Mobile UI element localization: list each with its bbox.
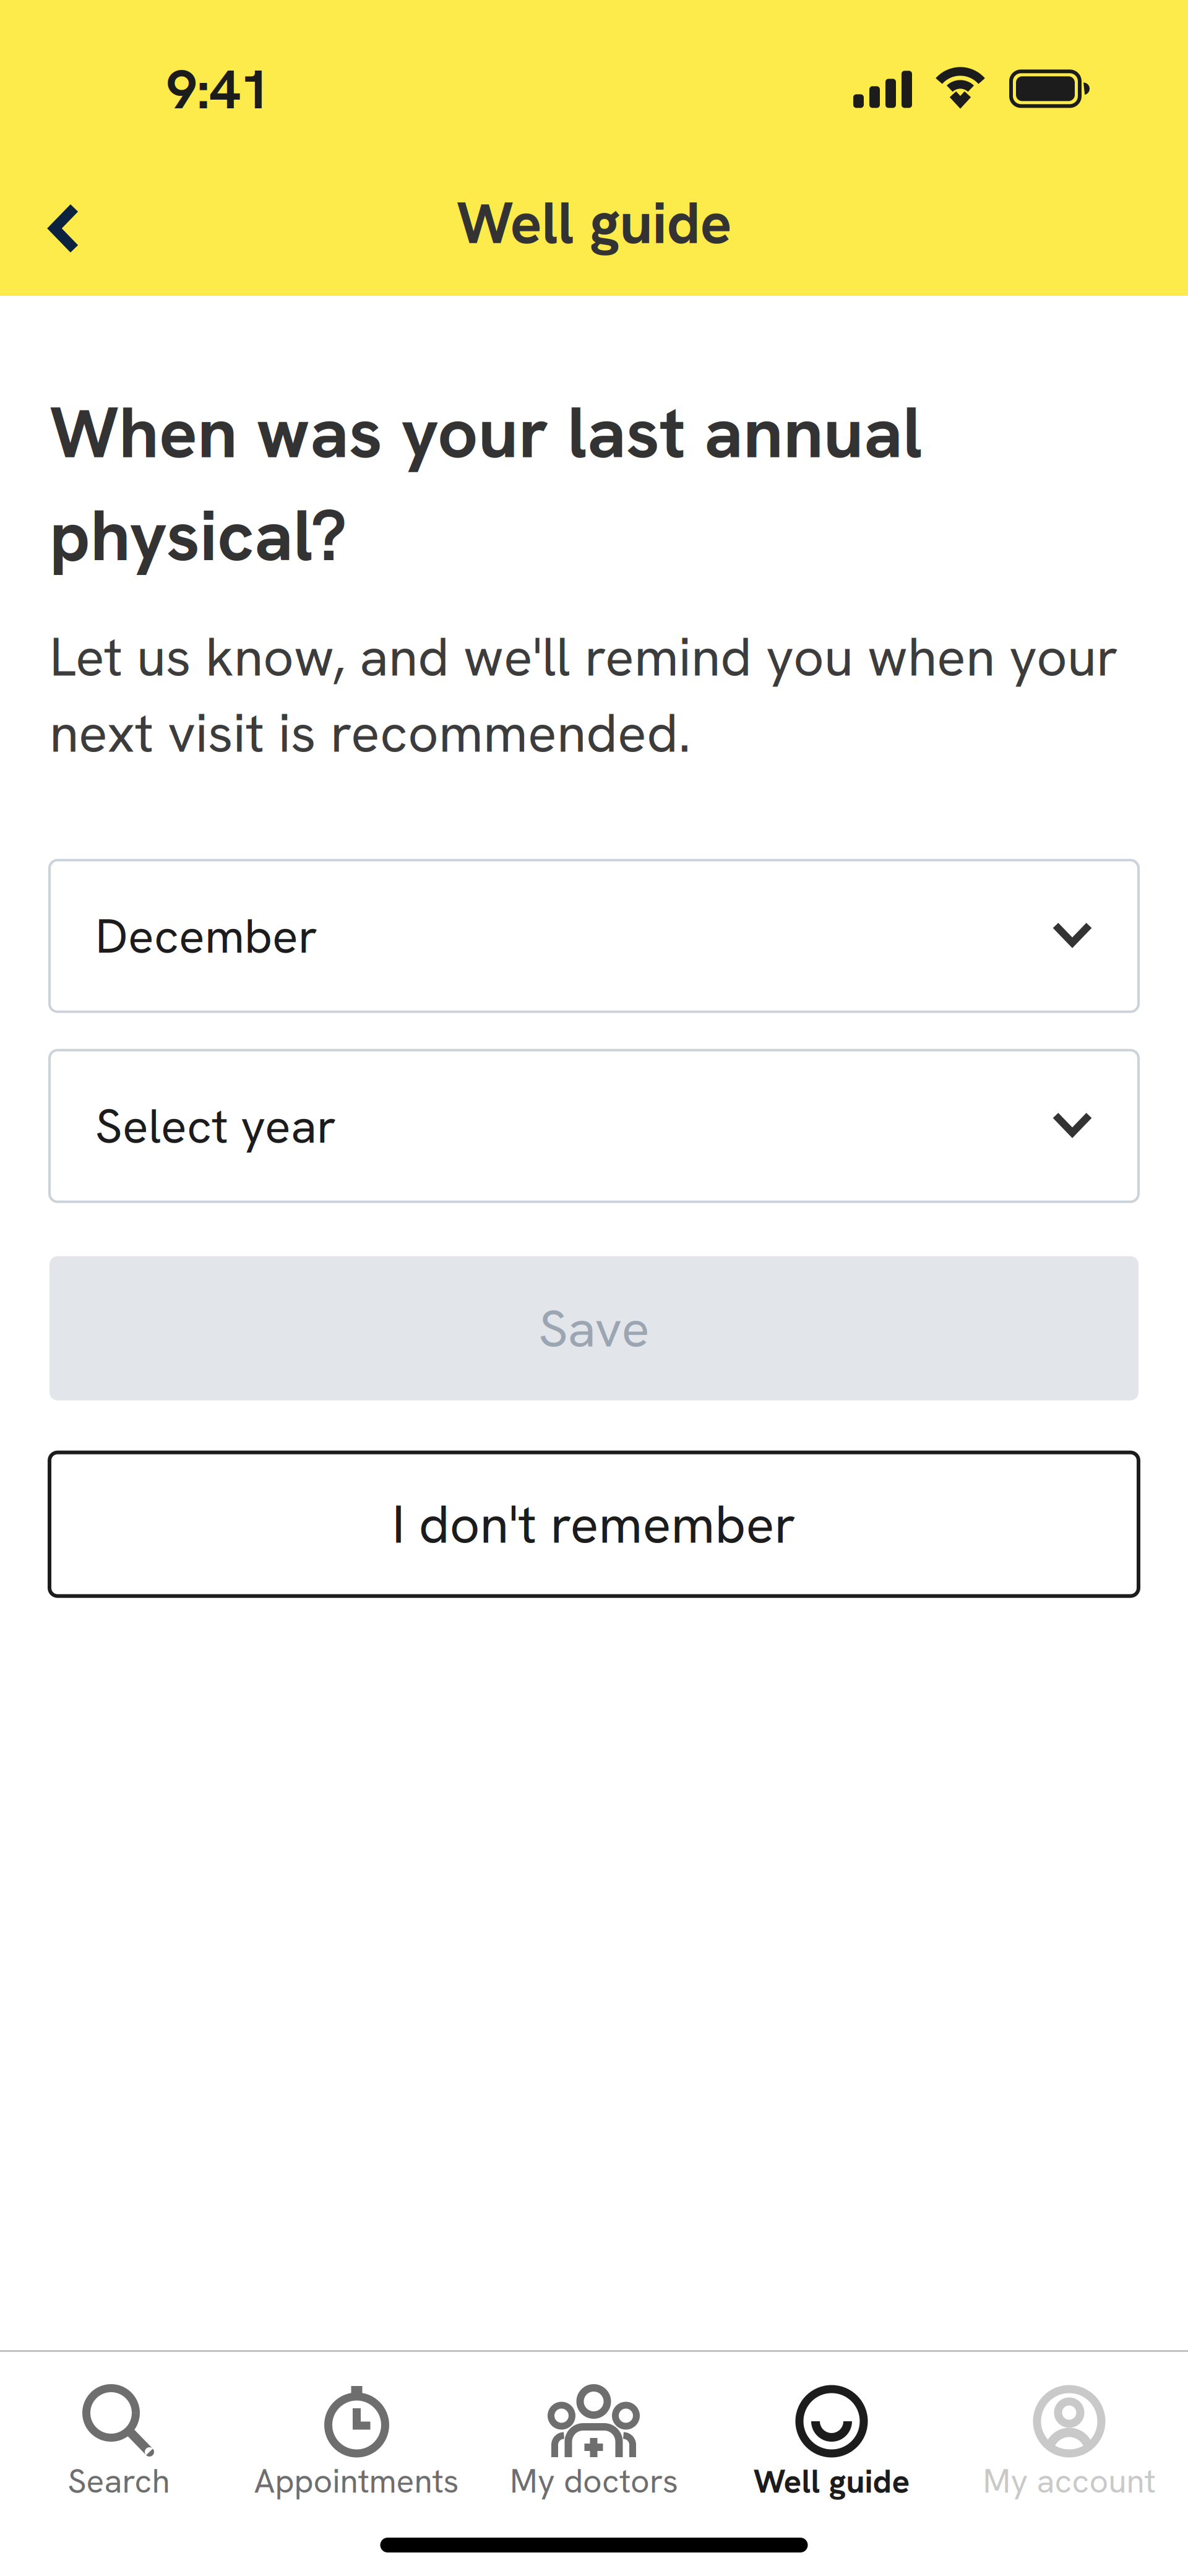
button[interactable]: I don't remember xyxy=(49,1452,1138,1596)
staticText: My account xyxy=(983,2460,1156,2503)
staticText: Select year xyxy=(95,1095,336,1157)
staticText: Let us know, and we'll remind you when y… xyxy=(49,622,1118,768)
button[interactable]: December xyxy=(49,860,1138,1012)
staticText: Appointments xyxy=(254,2460,459,2503)
staticText: Well guide xyxy=(753,2460,910,2503)
button[interactable]: Back xyxy=(0,115,123,296)
button[interactable]: Well guide xyxy=(713,2352,950,2503)
staticText: December xyxy=(95,905,317,967)
button[interactable]: Search xyxy=(0,2352,238,2503)
button[interactable]: My doctors xyxy=(475,2352,713,2503)
staticText: I don't remember xyxy=(392,1490,796,1559)
staticText: When was your last annual physical? xyxy=(49,386,923,582)
staticText: Search xyxy=(68,2460,170,2503)
button[interactable]: My account xyxy=(950,2352,1188,2503)
staticText: Save xyxy=(539,1294,649,1362)
button[interactable]: Save xyxy=(49,1256,1138,1400)
button[interactable]: Appointments xyxy=(238,2352,475,2503)
staticText: Well guide xyxy=(456,184,732,261)
staticText: My doctors xyxy=(510,2460,678,2503)
button[interactable]: Select year xyxy=(49,1050,1138,1202)
staticText: 9:41 xyxy=(166,54,270,125)
